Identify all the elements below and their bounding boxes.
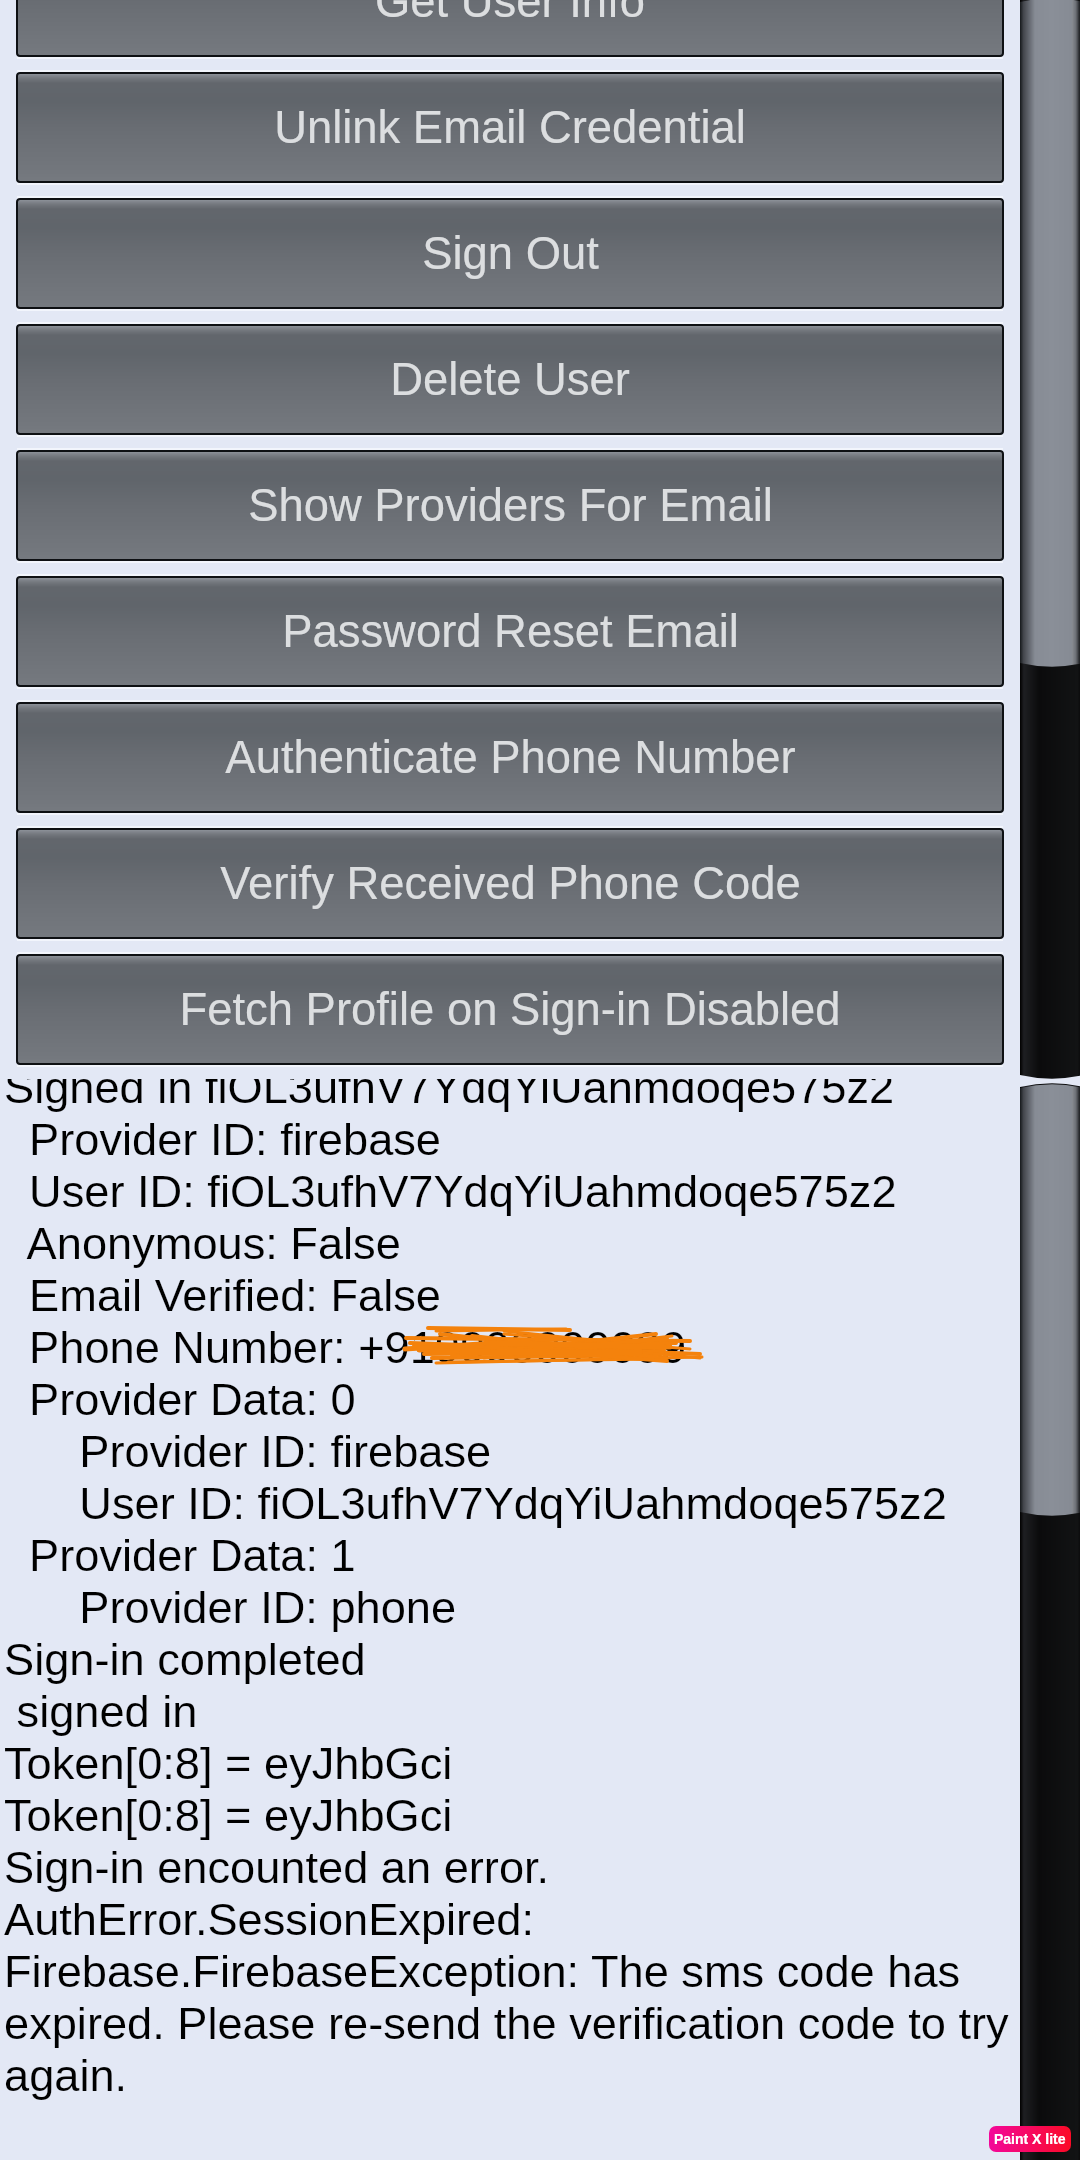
staticText: Sign-in encounted an error. — [4, 1842, 550, 1892]
staticText: Provider ID: firebase — [4, 1114, 441, 1164]
button[interactable]: Scrollbar — [1020, 0, 1080, 1080]
staticText: User ID: fiOL3ufhV7YdqYiUahmdoqe575z2 — [4, 1166, 897, 1216]
button[interactable]: Get User Info — [16, 0, 1004, 57]
staticText: Sign-in completed — [4, 1634, 366, 1684]
staticText: Unlink Email Credential — [274, 102, 746, 153]
staticText: Sign Out — [422, 228, 599, 279]
button[interactable]: Password Reset Email — [16, 576, 1004, 687]
staticText: Token[0:8] = eyJhbGci — [4, 1738, 453, 1788]
staticText: Provider ID: phone — [4, 1582, 457, 1632]
staticText: Provider Data: 1 — [4, 1530, 356, 1580]
staticText: expired. Please re-send the verification… — [4, 1998, 1009, 2048]
staticText: Firebase.FirebaseException: The sms code… — [4, 1946, 961, 1996]
staticText: Authenticate Phone Number — [225, 732, 796, 783]
staticText: Fetch Profile on Sign-in Disabled — [179, 984, 841, 1035]
staticText: Get User Info — [375, 0, 645, 27]
button[interactable]: Verify Received Phone Code — [16, 828, 1004, 939]
staticText: Provider Data: 0 — [4, 1374, 356, 1424]
staticText: Email Verified: False — [4, 1270, 441, 1320]
staticText: Provider ID: firebase — [4, 1426, 492, 1476]
staticText: Signed in fiOL3ufhV7YdqYiUahmdoqe575z2 — [4, 1079, 895, 1112]
staticText: AuthError.SessionExpired: — [4, 1894, 534, 1944]
button[interactable]: Show Providers For Email — [16, 450, 1004, 561]
staticText: Password Reset Email — [282, 606, 739, 657]
staticText: Phone Number: +919999999999 — [4, 1322, 687, 1372]
button[interactable]: Scrollbar — [1020, 1080, 1080, 2160]
staticText: Paint X lite — [994, 2131, 1066, 2147]
staticText: signed in — [4, 1686, 198, 1736]
button[interactable]: Authenticate Phone Number — [16, 702, 1004, 813]
staticText: Anonymous: False — [4, 1218, 401, 1268]
button[interactable]: Sign Out — [16, 198, 1004, 309]
button[interactable]: Fetch Profile on Sign-in Disabled — [16, 954, 1004, 1065]
staticText: Show Providers For Email — [248, 480, 773, 531]
staticText: User ID: fiOL3ufhV7YdqYiUahmdoqe575z2 — [4, 1478, 947, 1528]
button[interactable]: Delete User — [16, 324, 1004, 435]
staticText: Delete User — [390, 354, 630, 405]
staticText: Token[0:8] = eyJhbGci — [4, 1790, 453, 1840]
button[interactable]: Unlink Email Credential — [16, 72, 1004, 183]
staticText: Verify Received Phone Code — [220, 858, 801, 909]
staticText: again. — [4, 2050, 128, 2100]
